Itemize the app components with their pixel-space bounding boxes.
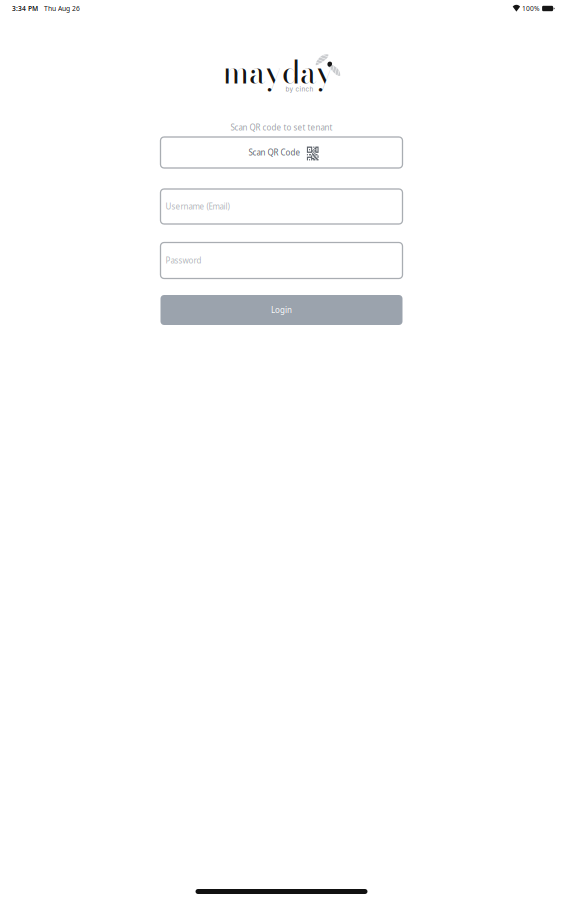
staticText: Scan QR Code [248,147,300,158]
staticText: 100% [520,4,542,13]
staticText: Login [271,305,292,315]
button[interactable]: Scan QR Code [160,137,402,168]
staticText: Password [165,255,201,266]
staticText: Scan QR code to set tenant [230,122,332,133]
staticText: 3:34 PM [12,4,38,13]
button[interactable]: Username (Email) [160,189,402,224]
staticText: Thu Aug 26 [38,4,80,13]
staticText: mayday [223,49,333,96]
button[interactable]: Password [160,242,402,278]
staticText: by cinch [286,85,314,93]
button[interactable]: Login [160,295,402,325]
staticText: Username (Email) [165,201,229,212]
